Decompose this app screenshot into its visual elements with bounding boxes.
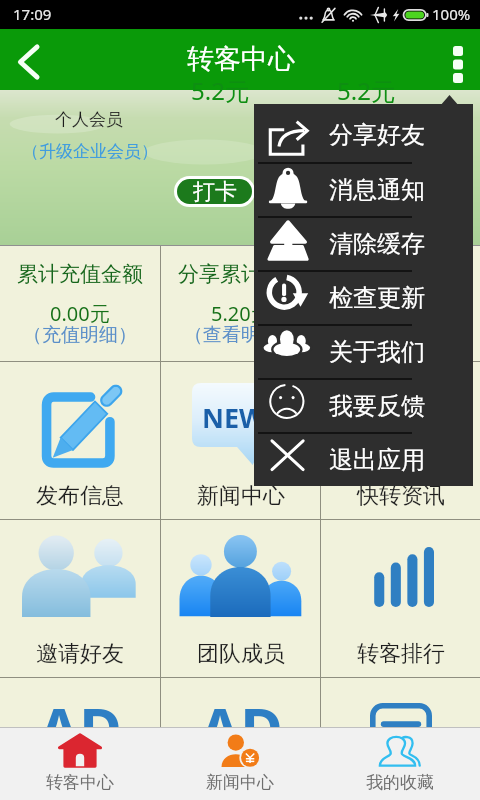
staticText: （充值明细）	[23, 323, 137, 347]
button[interactable]: NEWS	[321, 362, 480, 519]
staticText: 团队成员	[197, 640, 285, 668]
staticText: 5.20元	[211, 300, 271, 327]
staticText: 新闻中心	[206, 772, 274, 793]
staticText: 分享好友	[329, 120, 425, 150]
button[interactable]: 转客中心	[0, 728, 160, 800]
staticText: 转客中心	[187, 42, 295, 76]
staticText: AD	[39, 688, 122, 767]
staticText: 打卡	[193, 179, 237, 203]
staticText: 检查更新	[329, 283, 425, 313]
button[interactable]: 检查更新	[254, 272, 473, 324]
staticText: 5.2元	[337, 74, 395, 107]
staticText: 100%	[432, 4, 471, 24]
button[interactable]: 我要反馈	[254, 380, 473, 432]
button[interactable]: AD	[161, 678, 320, 800]
staticText: 分享累计收益	[178, 261, 304, 287]
button[interactable]: 关于我们	[254, 326, 473, 378]
button[interactable]: 分享累计收益	[161, 246, 320, 361]
staticText: 消息通知	[329, 175, 425, 205]
staticText: 个人会员	[55, 109, 123, 130]
staticText: （升级企业会员）	[22, 141, 158, 162]
staticText: 团队累计收益	[338, 261, 464, 287]
button[interactable]: Back	[0, 29, 58, 90]
staticText: （查看明细）	[184, 323, 298, 347]
staticText: 5.2元	[191, 74, 249, 107]
button[interactable]: 消息通知	[254, 164, 473, 216]
staticText: 转客中心	[46, 772, 114, 793]
button[interactable]: 我的收藏	[320, 728, 480, 800]
staticText: （查看明细）	[344, 323, 458, 347]
staticText: 邀请好友	[36, 640, 124, 668]
staticText: 发布信息	[36, 482, 124, 510]
button[interactable]: 累计充值金额	[0, 246, 160, 361]
staticText: 累计充值金额	[17, 261, 143, 287]
button[interactable]: 新闻中心	[160, 728, 320, 800]
button[interactable]: 分享好友	[254, 104, 473, 162]
button[interactable]: 清除缓存	[254, 218, 473, 270]
staticText: 快转资讯	[357, 482, 445, 510]
button[interactable]: 团队累计收益	[321, 246, 480, 361]
button[interactable]: 转客排行	[321, 520, 480, 677]
button[interactable]: 邀请好友	[0, 520, 160, 677]
staticText: 关于我们	[329, 337, 425, 367]
staticText: NEWS	[202, 399, 281, 436]
staticText: 清除缓存	[329, 229, 425, 259]
staticText: NEWS	[362, 399, 441, 436]
button[interactable]: More options	[426, 29, 480, 90]
staticText: AD	[200, 688, 283, 767]
staticText: 0.00元	[371, 300, 431, 327]
staticText: 我的收藏	[366, 772, 434, 793]
button[interactable]: 发布信息	[0, 362, 160, 519]
button[interactable]: 我的钱包	[321, 678, 480, 800]
button[interactable]: 打卡	[177, 179, 252, 204]
staticText: 转客排行	[357, 640, 445, 668]
button[interactable]: 退出应用	[254, 434, 473, 486]
staticText: 新闻中心	[197, 482, 285, 510]
staticText: 0.00元	[50, 300, 110, 327]
staticText: 退出应用	[329, 445, 425, 475]
button[interactable]: NEWS	[161, 362, 320, 519]
staticText: 我要反馈	[329, 391, 425, 421]
staticText: 17:09	[13, 4, 52, 24]
button[interactable]: AD	[0, 678, 160, 800]
button[interactable]: 团队成员	[161, 520, 320, 677]
